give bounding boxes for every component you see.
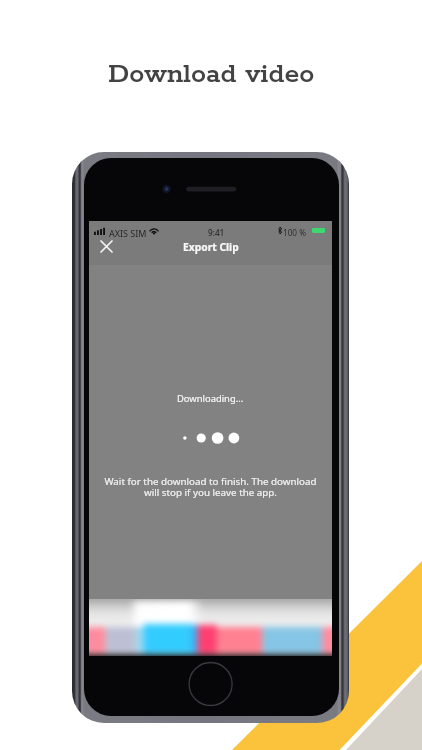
staticText: Wait for the download to finish. The dow… bbox=[104, 475, 317, 499]
staticText: Downloading... bbox=[177, 392, 244, 405]
staticText: Download video bbox=[108, 57, 315, 91]
staticText: AXIS SIM bbox=[109, 227, 147, 239]
staticText: 100 % bbox=[283, 227, 306, 238]
staticText: 9:41 bbox=[208, 227, 225, 238]
button[interactable]: Close bbox=[96, 236, 116, 256]
staticText: Export Clip bbox=[183, 240, 239, 254]
